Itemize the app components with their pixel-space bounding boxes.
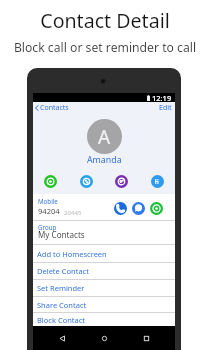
staticText: Add to Homescreen [37, 249, 107, 259]
staticText: 94204 [38, 206, 60, 216]
staticText: Contacts [40, 103, 69, 113]
button[interactable]: Share Contact [33, 296, 175, 312]
button[interactable]: Contacts [33, 103, 73, 113]
button[interactable]: WhatsApp [44, 175, 57, 188]
staticText: Block Contact [37, 315, 86, 325]
button[interactable]: Set Reminder [33, 279, 175, 296]
staticText: Delete Contact [37, 266, 89, 276]
button[interactable]: WhatsApp call [150, 202, 163, 215]
button[interactable]: Viber [115, 175, 128, 188]
button[interactable]: Group [33, 220, 175, 244]
staticText: 12:19 [152, 93, 172, 102]
staticText: Group [38, 223, 57, 231]
button[interactable]: Add to Homescreen [33, 244, 175, 262]
staticText: Contact Detail [0, 7, 210, 34]
button[interactable]: Hike [151, 175, 164, 188]
button[interactable]: Back [55, 331, 69, 345]
staticText: Set Reminder [37, 283, 85, 293]
staticText: Amanda [87, 154, 122, 166]
button[interactable]: Recents [139, 331, 153, 345]
button[interactable]: Home [97, 331, 111, 345]
button[interactable]: Call [114, 202, 127, 215]
staticText: My Contacts [38, 229, 85, 240]
button[interactable]: Block Contact [33, 312, 175, 326]
staticText: Mobile [38, 197, 58, 205]
staticText: 20445 [64, 208, 82, 216]
button[interactable]: Delete Contact [33, 262, 175, 279]
staticText: A [98, 124, 111, 150]
staticText: Share Contact [37, 300, 87, 310]
button[interactable]: Skype [80, 175, 93, 188]
button[interactable]: Message [132, 202, 145, 215]
button[interactable]: Mobile [33, 194, 175, 220]
staticText: Block call or set reminder to call [0, 39, 210, 56]
button[interactable]: Edit [155, 103, 175, 113]
